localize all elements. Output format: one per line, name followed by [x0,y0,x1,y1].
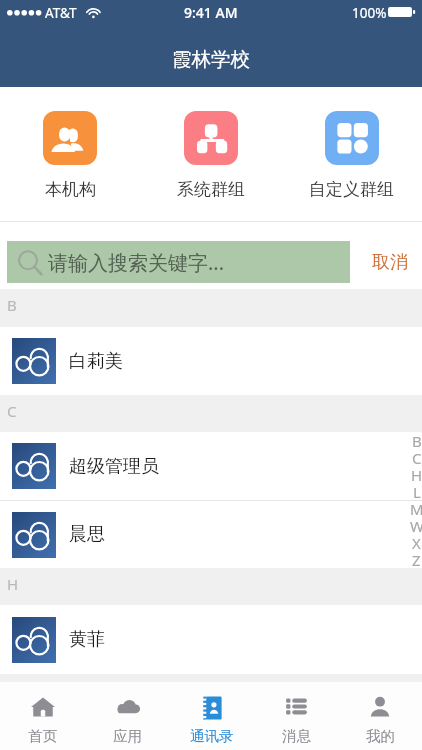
staticText: AT&T [45,4,77,22]
staticText: 通讯录 [190,727,234,745]
staticText: C [412,448,422,465]
staticText: X [412,533,421,550]
button[interactable]: 通讯录 [170,682,254,750]
button[interactable]: 请输入搜索关键字... [7,241,350,283]
staticText: 应用 [113,727,142,745]
staticText: Z [412,550,421,567]
button[interactable]: 超级管理员 [0,432,422,500]
button[interactable]: 首页 [0,682,85,750]
button[interactable]: 系统群组 [140,111,281,200]
staticText: H [7,574,19,594]
staticText: 我的 [366,727,395,745]
button[interactable]: 应用 [85,682,170,750]
staticText: 白莉美 [69,350,123,373]
staticText: B [412,431,422,448]
staticText: 本机构 [45,179,96,200]
staticText: 系统群组 [177,179,245,200]
staticText: B [7,295,17,315]
staticText: M [410,499,422,516]
staticText: H [411,465,422,482]
staticText: 自定义群组 [309,179,394,200]
staticText: 超级管理员 [69,455,159,478]
button[interactable]: 自定义群组 [281,111,422,200]
staticText: 100% [352,4,387,22]
staticText: W [410,516,422,533]
staticText: C [7,401,17,421]
staticText: 晨思 [69,523,105,546]
button[interactable]: 黄菲 [0,605,422,674]
button[interactable]: 消息 [254,682,338,750]
staticText: 黄菲 [69,628,105,651]
staticText: 消息 [282,727,311,745]
staticText: 霞林学校 [172,47,250,72]
button[interactable]: 白莉美 [0,327,422,395]
button[interactable]: 取消 [350,241,422,283]
button[interactable]: 晨思 [0,501,422,568]
button[interactable]: 本机构 [0,111,140,200]
staticText: 取消 [372,251,408,274]
staticText: 首页 [28,727,57,745]
staticText: 9:41 AM [184,3,238,22]
staticText: L [413,482,421,499]
staticText: 请输入搜索关键字... [48,249,225,276]
button[interactable]: 我的 [338,682,422,750]
